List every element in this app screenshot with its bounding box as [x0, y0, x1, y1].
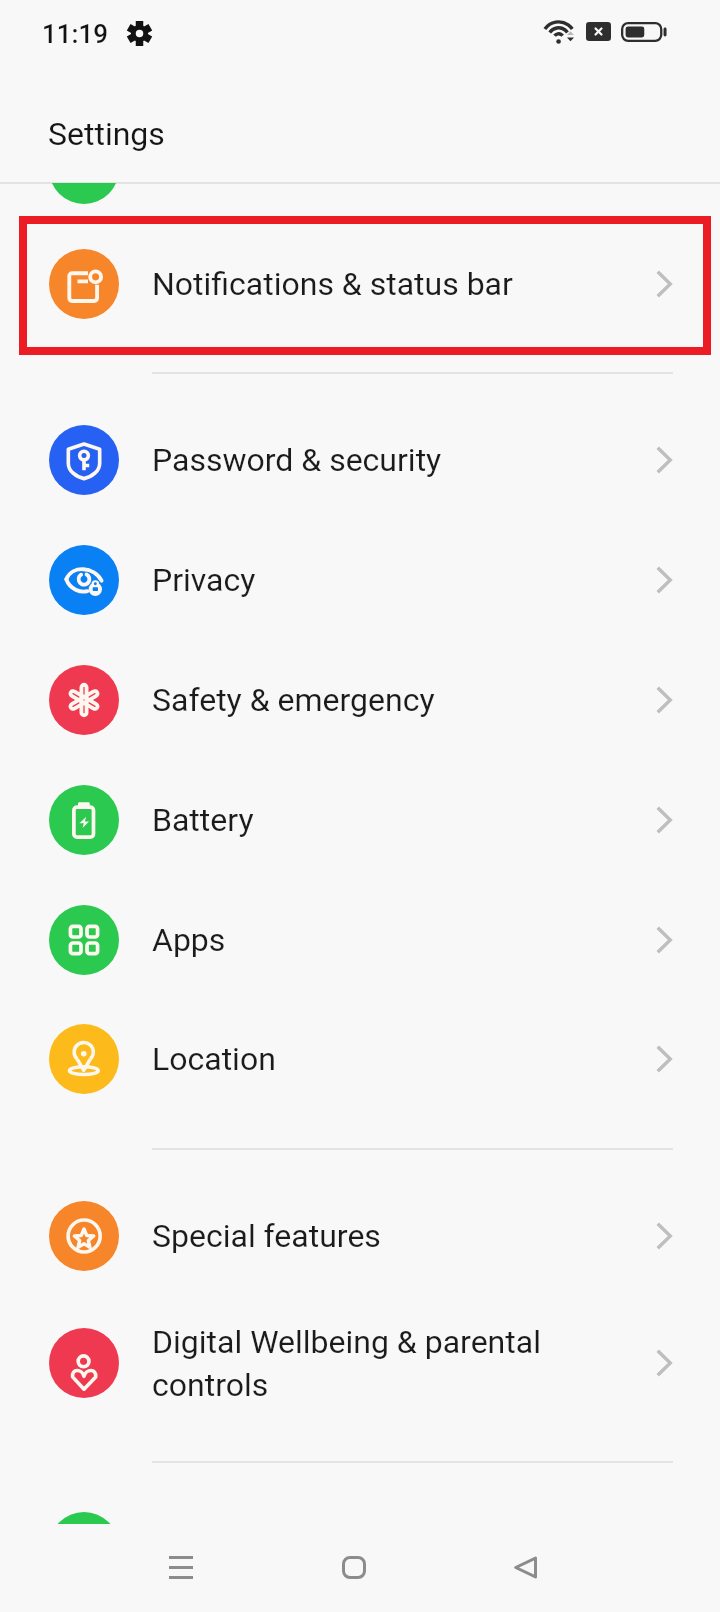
button[interactable]: Apps — [0, 880, 720, 1000]
button[interactable]: Battery — [0, 760, 720, 880]
button[interactable]: Privacy — [0, 520, 720, 640]
staticText: Digital Wellbeing & parental controls — [152, 1323, 656, 1404]
button[interactable]: Special features — [0, 1176, 720, 1296]
staticText: Settings — [48, 115, 165, 153]
staticText: Notifications & status bar — [152, 265, 656, 303]
button[interactable]: Home — [314, 1522, 394, 1612]
staticText: Apps — [152, 921, 656, 959]
staticText: Location — [152, 1040, 656, 1078]
button[interactable]: Notifications & status bar — [0, 224, 720, 344]
staticText: Privacy — [152, 561, 656, 599]
staticText: Password & security — [152, 441, 656, 479]
button[interactable]: Back — [485, 1522, 565, 1612]
button[interactable]: Safety & emergency — [0, 640, 720, 760]
staticText: 11:19 — [42, 19, 109, 49]
staticText: Safety & emergency — [152, 681, 656, 719]
button[interactable]: Recent apps — [141, 1522, 221, 1612]
button[interactable]: Password & security — [0, 400, 720, 520]
button[interactable]: Digital Wellbeing & parental controls — [0, 1303, 720, 1423]
button[interactable]: Location — [0, 999, 720, 1119]
staticText: Battery — [152, 801, 656, 839]
staticText: Special features — [152, 1217, 656, 1255]
